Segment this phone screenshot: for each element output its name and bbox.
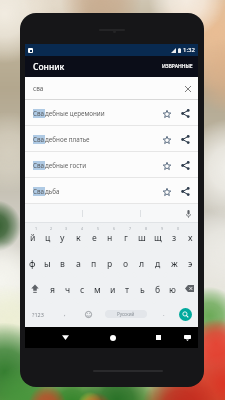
staticText: е (92, 232, 97, 244)
staticText: п (91, 258, 97, 270)
button[interactable]: Русский (98, 302, 154, 326)
button[interactable]: 6 (102, 224, 118, 248)
staticText: ф (29, 258, 36, 270)
staticText: 4 (81, 226, 84, 231)
button[interactable]: с (75, 276, 90, 300)
staticText: 0 (177, 226, 180, 231)
button[interactable]: ч (60, 276, 75, 300)
button[interactable]: л (134, 250, 150, 274)
button[interactable]: я (44, 276, 60, 300)
button[interactable]: 2 (40, 224, 55, 248)
button[interactable]: Сва (25, 178, 198, 204)
button[interactable]: 3 (55, 224, 70, 248)
staticText: и (110, 284, 116, 296)
button[interactable]: р (102, 250, 118, 274)
staticText: дебное платье (45, 135, 90, 144)
staticText: ц (45, 232, 51, 244)
button[interactable]: 9 (150, 224, 166, 248)
button[interactable]: Favorite (159, 132, 174, 147)
button[interactable]: б (150, 276, 165, 300)
staticText: р (107, 258, 113, 270)
staticText: ?123 (32, 311, 44, 318)
staticText: д (155, 258, 161, 270)
staticText: н (107, 232, 113, 244)
staticText: э (188, 258, 193, 270)
button[interactable]: 7 (118, 224, 134, 248)
button[interactable]: Recent apps (151, 330, 166, 345)
staticText: ы (44, 258, 51, 270)
button[interactable]: Favorite (159, 158, 174, 173)
button[interactable]: 4 (70, 224, 86, 248)
staticText: х (188, 232, 193, 244)
button[interactable]: т (120, 276, 135, 300)
staticText: . (163, 310, 165, 318)
button[interactable]: Backspace (180, 276, 198, 300)
button[interactable]: 1 (25, 224, 40, 248)
button[interactable]: сва (25, 77, 198, 100)
button[interactable]: 8 (134, 224, 150, 248)
staticText: с (80, 284, 85, 296)
staticText: ю (169, 284, 176, 296)
button[interactable]: э (182, 250, 198, 274)
button[interactable]: Share (178, 106, 193, 121)
staticText: о (123, 258, 129, 270)
staticText: Русский (117, 311, 135, 317)
button[interactable]: Shift (25, 276, 44, 300)
button[interactable]: Clear (181, 82, 194, 95)
staticText: м (94, 284, 101, 296)
button[interactable]: а (70, 250, 86, 274)
button[interactable]: и (105, 276, 120, 300)
button[interactable]: ж (166, 250, 182, 274)
staticText: к (76, 232, 81, 244)
staticText: г (124, 232, 128, 244)
button[interactable]: Home (105, 330, 120, 345)
staticText: ч (65, 284, 71, 296)
button[interactable]: Share (178, 132, 193, 147)
button[interactable]: ь (135, 276, 150, 300)
button[interactable]: ю (165, 276, 180, 300)
staticText: 9 (161, 226, 164, 231)
button[interactable]: Voice input (183, 208, 194, 219)
button[interactable]: в (55, 250, 70, 274)
button[interactable]: Back (58, 330, 73, 345)
button[interactable]: х (182, 224, 198, 248)
staticText: дебные церемонии (45, 109, 105, 118)
button[interactable]: Emoji (78, 302, 98, 326)
button[interactable]: ?123 (25, 302, 51, 326)
button[interactable]: Favorite (159, 184, 174, 199)
button[interactable]: Favorite (159, 106, 174, 121)
button[interactable]: 0 (166, 224, 182, 248)
staticText: 3 (65, 226, 68, 231)
staticText: т (125, 284, 130, 296)
button[interactable]: о (118, 250, 134, 274)
button[interactable]: Search (179, 308, 192, 321)
staticText: б (155, 284, 161, 296)
staticText: й (30, 232, 36, 244)
button[interactable]: Сва (25, 100, 198, 126)
button[interactable]: 5 (86, 224, 102, 248)
staticText: 7 (129, 226, 132, 231)
staticText: 8 (145, 226, 148, 231)
staticText: я (50, 284, 55, 296)
button[interactable]: п (86, 250, 102, 274)
staticText: щ (154, 232, 162, 244)
button[interactable]: Сва (25, 126, 198, 152)
staticText: 2 (50, 226, 53, 231)
staticText: Сва (33, 161, 45, 170)
button[interactable]: Share (178, 158, 193, 173)
staticText: дебные гости (45, 161, 87, 170)
staticText: Сонник (33, 61, 65, 73)
button[interactable]: ИЗБРАННЫЕ (157, 59, 198, 74)
button[interactable]: ф (25, 250, 40, 274)
button[interactable]: ы (40, 250, 55, 274)
staticText: л (139, 258, 145, 270)
staticText: 1:32 (183, 46, 195, 54)
button[interactable]: Share (178, 184, 193, 199)
button[interactable]: м (90, 276, 105, 300)
button[interactable]: Hide keyboard (181, 332, 193, 344)
button[interactable]: д (150, 250, 166, 274)
button[interactable]: Сва (25, 152, 198, 178)
staticText: а (76, 258, 81, 270)
